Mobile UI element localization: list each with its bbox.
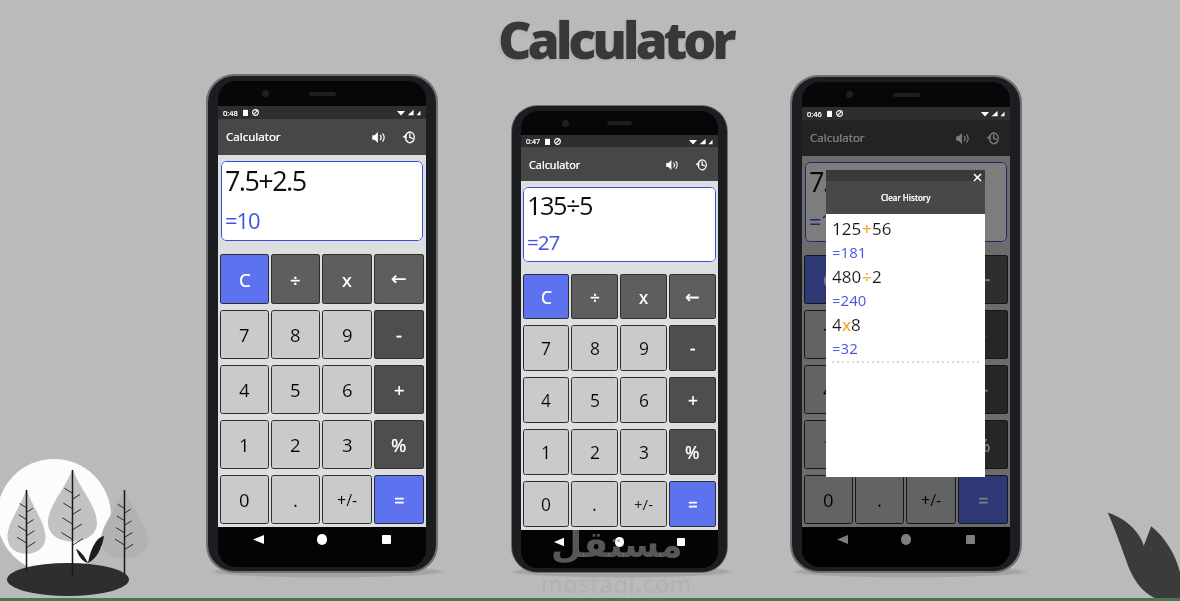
button[interactable]: 0	[220, 475, 269, 524]
staticText: C	[823, 267, 835, 292]
button[interactable]: +	[958, 365, 1008, 414]
button[interactable]: ÷	[571, 274, 618, 319]
button[interactable]: =	[374, 475, 424, 524]
button[interactable]: History	[980, 126, 1004, 150]
button[interactable]: 6	[620, 377, 667, 423]
button[interactable]: 2	[271, 420, 320, 469]
button[interactable]: Clear History	[826, 181, 985, 214]
button[interactable]: 3	[620, 429, 667, 475]
button[interactable]: +	[669, 377, 716, 423]
staticText: 0	[239, 487, 250, 512]
button[interactable]: History	[396, 125, 420, 149]
button[interactable]: 9	[322, 310, 372, 359]
button[interactable]: 1	[523, 429, 569, 475]
button[interactable]: 4	[523, 377, 569, 423]
button[interactable]: -	[669, 325, 716, 371]
button[interactable]: Sound	[366, 125, 390, 149]
staticText: ÷	[874, 267, 885, 292]
button[interactable]: Recents	[374, 527, 398, 551]
button[interactable]: History	[689, 153, 712, 176]
staticText: +	[978, 377, 989, 402]
button[interactable]: 480	[832, 264, 985, 312]
staticText: Calculator	[496, 5, 731, 76]
button[interactable]: 4	[832, 312, 985, 360]
button[interactable]: 7	[804, 310, 853, 359]
button[interactable]: =	[669, 481, 716, 527]
button[interactable]: C	[804, 255, 853, 304]
button[interactable]: 0	[523, 481, 569, 527]
button[interactable]: +/-	[620, 481, 667, 527]
button[interactable]: 8	[571, 325, 618, 371]
button[interactable]: -	[374, 310, 424, 359]
staticText: =181	[832, 242, 867, 262]
button[interactable]: Home	[310, 527, 334, 551]
button[interactable]: 4	[804, 365, 853, 414]
button[interactable]: x	[620, 274, 667, 319]
button[interactable]: 8	[855, 310, 904, 359]
button[interactable]: %	[669, 429, 716, 475]
button[interactable]: 7	[523, 325, 569, 371]
button[interactable]: .	[271, 475, 320, 524]
button[interactable]: 6	[322, 365, 372, 414]
button[interactable]: Back	[547, 530, 570, 553]
button[interactable]: Sound	[660, 153, 683, 176]
button[interactable]: +	[374, 365, 424, 414]
button[interactable]: 7	[220, 310, 269, 359]
staticText: -	[690, 336, 696, 360]
staticText: 4	[823, 377, 834, 402]
staticText: +/-	[921, 489, 942, 511]
button[interactable]: Home	[608, 530, 631, 553]
button[interactable]: %	[958, 420, 1008, 469]
button[interactable]: +/-	[322, 475, 372, 524]
button[interactable]: Sound	[950, 126, 974, 150]
button[interactable]: 2	[571, 429, 618, 475]
button[interactable]: 125	[832, 216, 985, 264]
button[interactable]: ←	[669, 274, 716, 319]
staticText: x	[639, 285, 649, 309]
button[interactable]: 9	[620, 325, 667, 371]
staticText: ←	[685, 287, 700, 307]
button[interactable]: Back	[246, 527, 270, 551]
button[interactable]: C	[220, 254, 269, 304]
staticText: .	[592, 492, 597, 516]
button[interactable]: .	[571, 481, 618, 527]
staticText: ÷	[290, 267, 301, 292]
button[interactable]: 3	[322, 420, 372, 469]
staticText: 0:47	[526, 136, 540, 146]
button[interactable]: ÷	[855, 255, 904, 304]
staticText: =	[978, 487, 989, 512]
staticText: +/-	[634, 494, 654, 514]
button[interactable]: Close	[971, 171, 983, 183]
staticText: -	[396, 322, 402, 347]
button[interactable]: Home	[894, 527, 918, 551]
button[interactable]: 4	[220, 365, 269, 414]
button[interactable]: 1	[220, 420, 269, 469]
button[interactable]: Recents	[958, 527, 982, 551]
button[interactable]: .	[855, 475, 904, 524]
button[interactable]: 8	[271, 310, 320, 359]
button[interactable]: -	[958, 310, 1008, 359]
button[interactable]: 0	[804, 475, 853, 524]
button[interactable]: %	[374, 420, 424, 469]
staticText: =	[688, 492, 698, 516]
button[interactable]: 1	[804, 420, 853, 469]
button[interactable]: ←	[958, 255, 1008, 304]
button[interactable]: ÷	[271, 254, 320, 304]
button[interactable]: Recents	[669, 530, 692, 553]
button[interactable]: Back	[830, 527, 854, 551]
button[interactable]: =	[958, 475, 1008, 524]
button[interactable]: C	[523, 274, 569, 319]
button[interactable]: x	[322, 254, 372, 304]
button[interactable]: 5	[571, 377, 618, 423]
button[interactable]: 5	[271, 365, 320, 414]
staticText: ÷	[862, 265, 872, 288]
staticText: +/-	[337, 489, 358, 511]
button[interactable]: +/-	[906, 475, 956, 524]
button[interactable]: ←	[374, 254, 424, 304]
